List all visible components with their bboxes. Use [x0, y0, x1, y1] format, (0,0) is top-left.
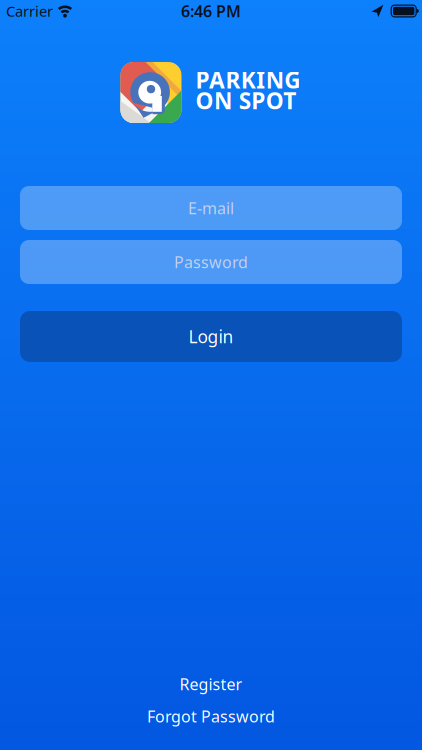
staticText: Password: [174, 251, 248, 273]
staticText: ON SPOT: [195, 85, 296, 115]
button[interactable]: E-mail: [20, 186, 402, 230]
staticText: Forgot Password: [147, 706, 275, 727]
staticText: Login: [188, 325, 233, 348]
staticText: 6:46 PM: [181, 0, 241, 22]
button[interactable]: Login: [20, 311, 402, 362]
staticText: Carrier: [6, 1, 53, 21]
staticText: PARKING: [195, 65, 300, 95]
button[interactable]: Register: [179, 673, 242, 695]
staticText: E-mail: [188, 197, 234, 219]
button[interactable]: Password: [20, 240, 402, 284]
button[interactable]: Forgot Password: [147, 706, 275, 727]
staticText: Register: [179, 673, 242, 695]
